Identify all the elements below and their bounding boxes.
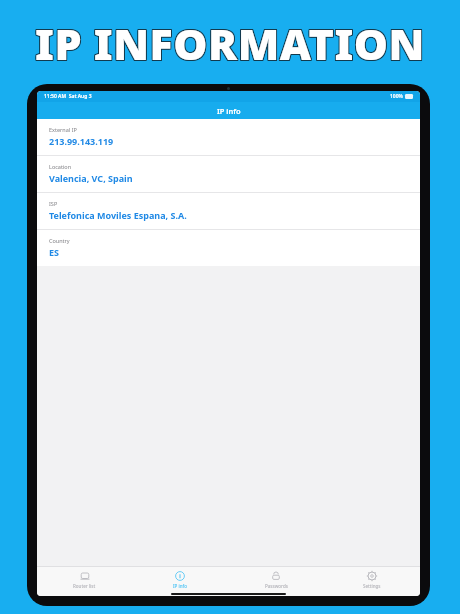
staticText: IP INFORMATION [36, 13, 426, 72]
button[interactable]: External IP [37, 119, 420, 155]
button[interactable]: ISP [37, 193, 420, 229]
staticText: 213.99.143.119 [49, 135, 114, 147]
staticText: Passwords [265, 583, 288, 589]
staticText: Router list [73, 583, 96, 589]
button[interactable]: Passwords [228, 567, 324, 592]
staticText: Telefonica Moviles Espana, S.A. [49, 209, 187, 221]
staticText: IP info [173, 583, 187, 589]
button[interactable]: IP info [132, 567, 228, 592]
staticText: Valencia, VC, Spain [49, 172, 133, 184]
staticText: IP INFORMATION [36, 15, 426, 74]
staticText: IP INFORMATION [34, 14, 424, 73]
staticText: 11:50 AM Sat Aug 3 [44, 93, 92, 100]
staticText: Country [49, 237, 70, 244]
staticText: Location [49, 163, 72, 170]
staticText: IP info [217, 106, 241, 116]
staticText: External IP [49, 126, 77, 133]
button[interactable]: Settings [324, 567, 420, 592]
staticText: IP INFORMATION [34, 13, 424, 72]
staticText: ISP [49, 200, 58, 207]
staticText: ES [49, 246, 59, 258]
staticText: IP INFORMATION [35, 13, 425, 72]
button[interactable]: Country [37, 230, 420, 266]
button[interactable]: Location [37, 156, 420, 192]
staticText: IP INFORMATION [34, 15, 424, 74]
button[interactable]: Router list [37, 567, 132, 592]
staticText: IP INFORMATION [35, 14, 425, 73]
staticText: IP INFORMATION [35, 15, 425, 74]
staticText: 100% [390, 93, 403, 100]
staticText: IP INFORMATION [36, 14, 426, 73]
staticText: Settings [363, 583, 381, 589]
